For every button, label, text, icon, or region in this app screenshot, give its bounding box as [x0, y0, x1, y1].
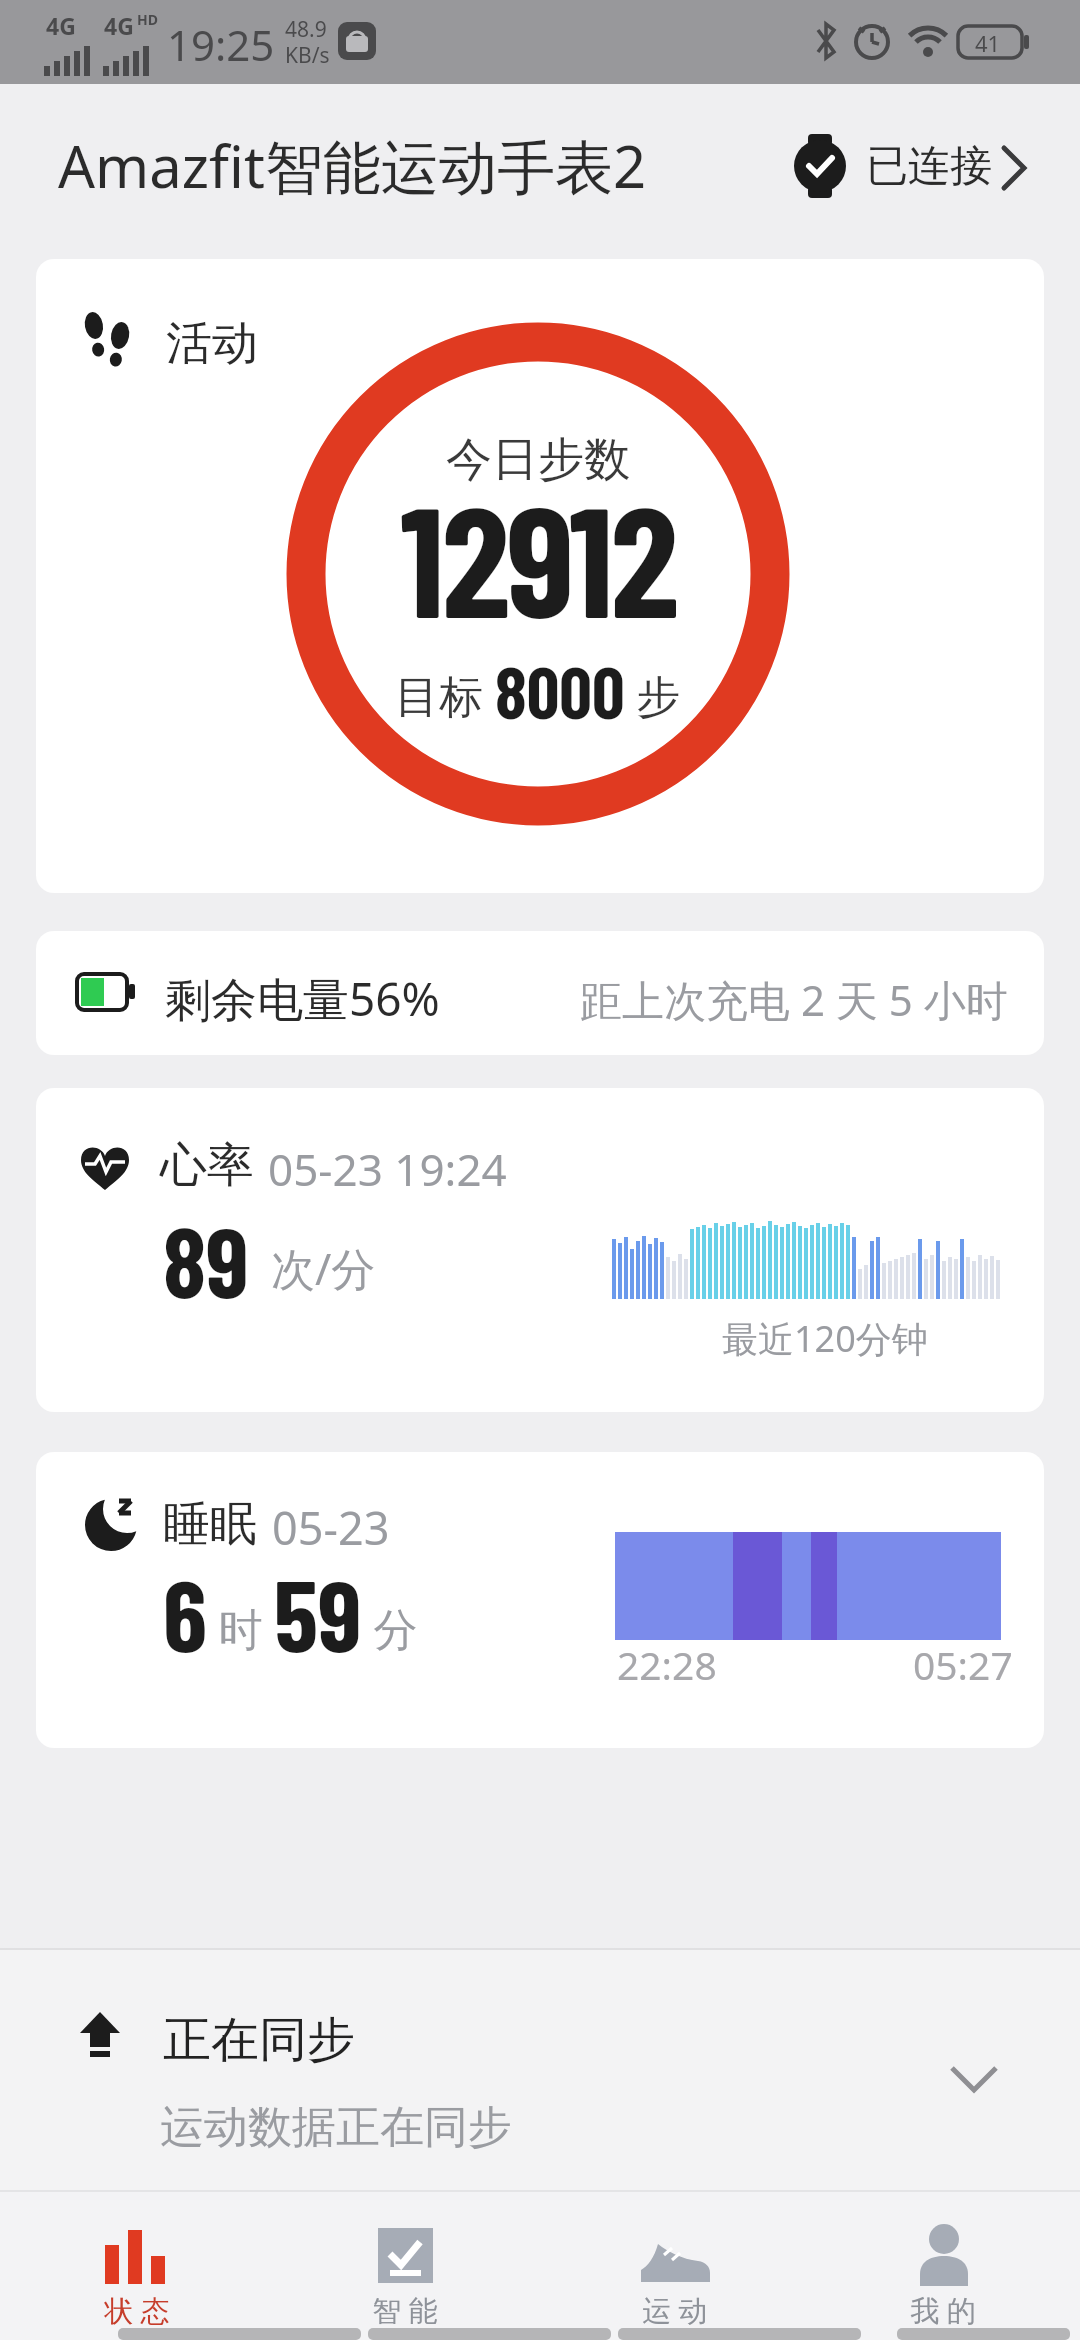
staticText: 我 的 [873, 2290, 1013, 2330]
staticText: 正在同步 [163, 2010, 355, 2070]
staticText: 步 [625, 665, 681, 725]
staticText: 目标 [395, 665, 495, 725]
staticText: 今日步数 [238, 431, 838, 489]
staticText: 59 [274, 1552, 362, 1672]
staticText: 智 能 [335, 2290, 475, 2330]
staticText: 89 [163, 1200, 249, 1318]
staticText: 05:27 [913, 1638, 1013, 1691]
button[interactable]: 智 能 [335, 2214, 475, 2330]
button[interactable]: 剩余电量56% [36, 931, 1044, 1055]
staticText: 最近120分钟 [722, 1314, 928, 1363]
staticText: 状 态 [67, 2290, 207, 2330]
staticText: 次/分 [271, 1238, 376, 1298]
button[interactable]: 运 动 [605, 2214, 745, 2330]
button[interactable]: 睡眠 [36, 1452, 1044, 1748]
staticText: 分 [362, 1598, 418, 1658]
staticText: 活动 [166, 315, 258, 373]
staticText: 6 [163, 1552, 207, 1672]
staticText: 剩余电量56% [165, 967, 440, 1030]
staticText: 48.9 [285, 15, 327, 44]
staticText: 运 动 [605, 2290, 745, 2330]
staticText: 时 [207, 1598, 274, 1658]
staticText: HD [137, 10, 158, 29]
staticText: 心率 [160, 1136, 254, 1195]
button[interactable]: 活动 [36, 259, 1044, 893]
staticText: 05-23 [272, 1497, 390, 1558]
button[interactable]: 已连接 [790, 128, 1050, 204]
staticText: 4G [104, 10, 134, 41]
staticText: KB/s [285, 41, 330, 70]
staticText: 距上次充电 2 天 5 小时 [580, 971, 1008, 1028]
staticText: 8000 [495, 647, 625, 733]
staticText: 4G [46, 10, 76, 41]
staticText: 睡眠 [163, 1495, 257, 1554]
button[interactable]: 正在同步 [0, 1948, 1080, 2190]
staticText: Amazfit智能运动手表2 [58, 126, 647, 205]
button[interactable]: 心率 [36, 1088, 1044, 1412]
staticText: 19:25 [167, 16, 275, 73]
staticText: 05-23 19:24 [268, 1139, 507, 1199]
staticText: 运动数据正在同步 [160, 2100, 512, 2155]
staticText: 已连接 [866, 140, 992, 193]
button[interactable]: 我 的 [873, 2214, 1013, 2330]
staticText: 22:28 [617, 1638, 717, 1691]
staticText: 12912 [238, 463, 838, 649]
staticText: 41 [975, 28, 1001, 58]
button[interactable]: 状 态 [67, 2214, 207, 2330]
